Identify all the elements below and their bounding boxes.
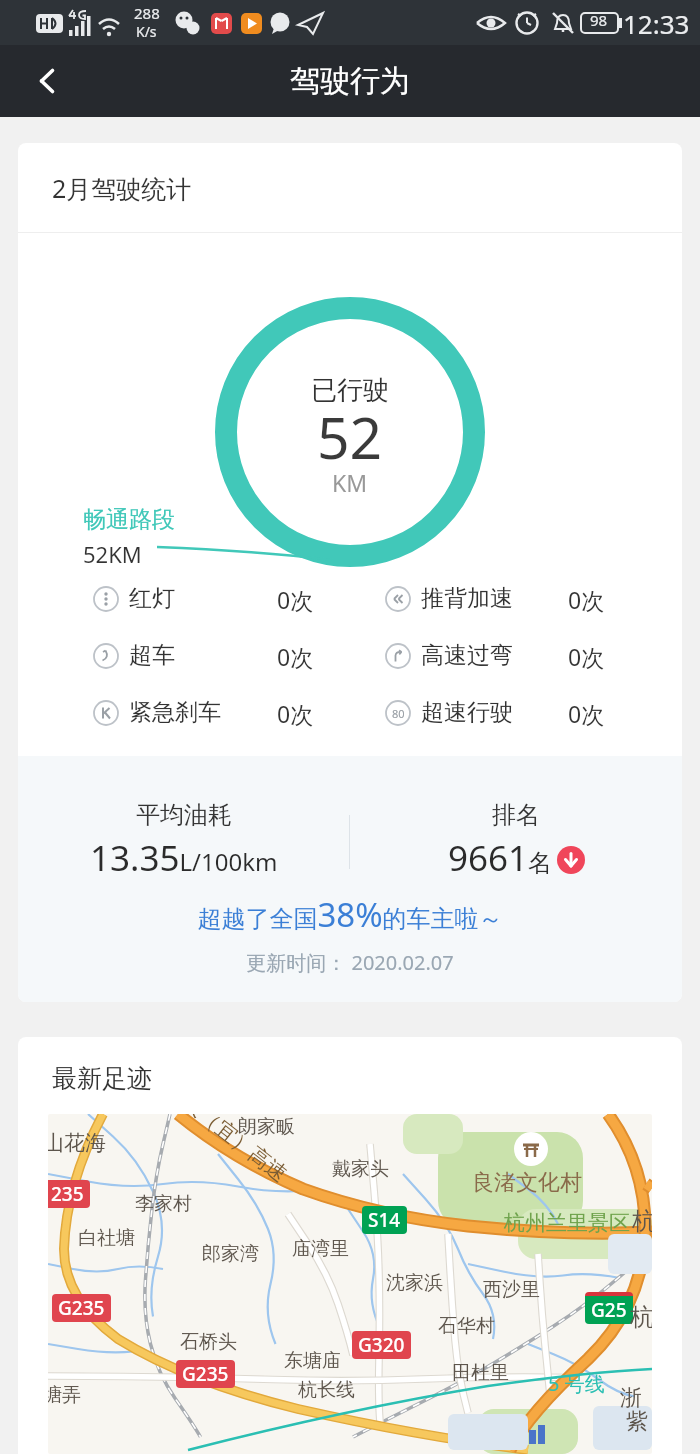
staticText: 0次 [568, 698, 605, 729]
staticText: KM [332, 467, 368, 498]
staticText: 更新时间： 2020.02.07 [18, 949, 682, 976]
staticText: 沈家浜 [386, 1271, 443, 1295]
staticText: 已行驶 [311, 374, 389, 407]
button[interactable]: 超车 [18, 627, 682, 684]
staticText: 平均油耗 [136, 800, 232, 830]
staticText: 13.35L/100km [90, 834, 278, 882]
staticText: 0次 [277, 698, 314, 729]
staticText: 52KM [83, 539, 142, 569]
staticText: 朗家畈 [238, 1115, 295, 1139]
staticText: 0次 [568, 584, 605, 615]
staticText: 杭长（宜）高速 [161, 1114, 292, 1187]
staticText: 235 [51, 1181, 84, 1207]
button[interactable]: 紧急刹车 [18, 684, 682, 741]
staticText: 最新足迹 [52, 1063, 152, 1094]
staticText: G235 [58, 1295, 105, 1321]
staticText: 紫 [626, 1408, 648, 1436]
staticText: 杭 [630, 1302, 652, 1332]
staticText: 0次 [277, 584, 314, 615]
button[interactable]: 杭长（宜）高速 [48, 1114, 652, 1454]
staticText: 杭长线 [298, 1378, 355, 1402]
staticText: 0次 [568, 641, 605, 672]
staticText: 高速过弯 [421, 641, 513, 670]
staticText: 田杜里 [452, 1361, 509, 1385]
staticText: 庙湾里 [292, 1237, 349, 1261]
staticText: 畅通路段 [83, 505, 175, 534]
staticText: S14 [368, 1207, 401, 1233]
staticText: 石桥头 [180, 1330, 237, 1354]
staticText: 石华村 [438, 1314, 495, 1338]
staticText: 郎家湾 [202, 1242, 259, 1266]
staticText: 2月驾驶统计 [52, 171, 192, 205]
staticText: 超车 [129, 641, 175, 670]
staticText: 良渚文化村 [472, 1169, 582, 1197]
staticText: G25 [591, 1297, 627, 1323]
staticText: 李家村 [135, 1192, 192, 1216]
staticText: 推背加速 [421, 584, 513, 613]
staticText: 52 [317, 398, 383, 476]
staticText: 超速行驶 [421, 698, 513, 727]
button[interactable]: 红灯 [18, 570, 682, 627]
staticText: 山花海 [48, 1130, 106, 1156]
staticText: 浙 [620, 1384, 642, 1412]
staticText: 驾驶行为 [290, 62, 410, 100]
staticText: G320 [358, 1332, 405, 1358]
staticText: 98 [590, 10, 608, 30]
button[interactable]: 2月驾驶统计 [18, 143, 682, 232]
staticText: 杭 [632, 1206, 652, 1236]
staticText: 红灯 [129, 584, 175, 613]
staticText: 杭州兰里景区 [504, 1210, 630, 1236]
staticText: 西沙里 [483, 1278, 540, 1302]
staticText: 12:33 [623, 6, 690, 41]
staticText: 80 [392, 706, 405, 721]
button[interactable] [26, 59, 70, 103]
staticText: K/s [136, 22, 157, 41]
staticText: 超越了全国38%的车主啦～ [18, 892, 682, 937]
staticText: 塘弄 [48, 1383, 81, 1407]
staticText: 288 [134, 3, 160, 23]
staticText: 白社塘 [78, 1226, 135, 1250]
staticText: 9661名 [448, 834, 553, 882]
staticText: 紧急刹车 [129, 698, 221, 727]
staticText: 0次 [277, 641, 314, 672]
staticText: 东塘庙 [284, 1349, 341, 1373]
staticText: 5 号线 [548, 1370, 605, 1397]
staticText: G235 [182, 1361, 229, 1387]
staticText: 戴家头 [332, 1157, 389, 1181]
staticText: 排名 [492, 800, 540, 830]
